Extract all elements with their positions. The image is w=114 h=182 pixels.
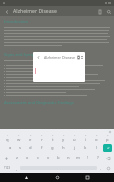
button[interactable]: z: [11, 153, 22, 163]
button[interactable]: Backspace: [103, 153, 113, 163]
button[interactable]: Emoji: [104, 163, 113, 173]
button[interactable]: a: [5, 143, 15, 153]
button[interactable]: Keyboard options: [108, 130, 112, 134]
staticText: z: [16, 155, 18, 161]
button[interactable]: ?: [93, 153, 103, 163]
staticText: 2: [18, 134, 20, 137]
staticText: y: [62, 137, 65, 143]
staticText: w: [17, 137, 21, 143]
staticText: !: [87, 155, 89, 161]
staticText: h: [62, 145, 65, 151]
staticText: l: [96, 145, 98, 151]
button[interactable]: f: [36, 143, 47, 153]
button[interactable]: ?123: [1, 163, 13, 173]
staticText: x: [26, 155, 29, 161]
button[interactable]: 7: [69, 134, 80, 143]
button[interactable]: 4: [36, 134, 47, 143]
staticText: b: [57, 155, 60, 161]
button[interactable]: g: [47, 143, 58, 153]
staticText: v: [47, 155, 50, 161]
button[interactable]: Copy: [75, 54, 81, 60]
button[interactable]: h: [58, 143, 69, 153]
button[interactable]: d: [25, 143, 36, 153]
staticText: g: [51, 145, 54, 151]
staticText: 3: [30, 134, 32, 137]
button[interactable]: Bookmark: [95, 7, 104, 16]
staticText: e: [29, 137, 32, 143]
staticText: Alzheimer Disease: [13, 8, 57, 15]
button[interactable]: !: [83, 153, 93, 163]
staticText: Introduction: [4, 19, 29, 24]
button[interactable]: l: [91, 143, 102, 153]
staticText: q: [6, 137, 9, 143]
button[interactable]: Recent apps: [83, 173, 92, 182]
button[interactable]: 2: [13, 134, 25, 143]
staticText: t: [52, 137, 54, 143]
staticText: Assessment and Diagnostic Findings: [4, 100, 74, 105]
button[interactable]: v: [43, 153, 53, 163]
staticText: i: [85, 137, 87, 143]
staticText: a: [9, 145, 12, 151]
button[interactable]: 3: [25, 134, 36, 143]
button[interactable]: 8: [80, 134, 91, 143]
staticText: c: [37, 155, 40, 161]
button[interactable]: 9: [91, 134, 102, 143]
staticText: m: [76, 155, 80, 161]
staticText: p: [106, 137, 109, 143]
staticText: r: [41, 137, 43, 143]
staticText: ?: [97, 155, 99, 161]
staticText: Alzheimer Disease: [44, 55, 75, 60]
staticText: 0: [107, 134, 109, 137]
button[interactable]: m: [73, 153, 83, 163]
button[interactable]: b: [53, 153, 63, 163]
staticText: d: [29, 145, 32, 151]
staticText: 1: [7, 134, 9, 137]
staticText: j: [74, 145, 76, 151]
button[interactable]: Back: [22, 173, 31, 182]
button[interactable]: More options: [81, 54, 83, 60]
staticText: ,: [16, 166, 18, 171]
button[interactable]: n: [63, 153, 73, 163]
button[interactable]: 0: [102, 134, 113, 143]
button[interactable]: Home: [53, 173, 62, 182]
staticText: 6: [63, 134, 65, 137]
staticText: k: [84, 145, 87, 151]
button[interactable]: ,: [13, 163, 20, 173]
button[interactable]: Navigate up: [2, 7, 11, 16]
staticText: 9: [96, 134, 98, 137]
staticText: s: [19, 145, 22, 151]
button[interactable]: Shift: [1, 153, 11, 163]
staticText: f: [41, 145, 43, 151]
button[interactable]: c: [33, 153, 43, 163]
staticText: 5: [52, 134, 54, 137]
staticText: ?123: [4, 166, 11, 170]
button[interactable]: Enter: [103, 144, 112, 152]
staticText: 4: [41, 134, 43, 137]
button[interactable]: k: [80, 143, 91, 153]
staticText: o: [95, 137, 98, 143]
button[interactable]: Close: [35, 54, 42, 61]
button[interactable]: Search: [104, 7, 113, 16]
staticText: n: [67, 155, 70, 161]
staticText: .: [100, 166, 102, 171]
staticText: 7: [74, 134, 76, 137]
staticText: 8: [85, 134, 87, 137]
button[interactable]: x: [22, 153, 33, 163]
button[interactable]: s: [15, 143, 25, 153]
button[interactable]: 5: [47, 134, 58, 143]
staticText: u: [73, 137, 76, 143]
button[interactable]: 6: [58, 134, 69, 143]
staticText: Signs and Symptoms: [4, 52, 44, 57]
button[interactable]: 1: [1, 134, 13, 143]
button[interactable]: j: [69, 143, 80, 153]
